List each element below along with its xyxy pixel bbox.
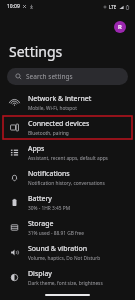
staticText: Sound & vibration <box>28 244 88 254</box>
staticText: Bluetooth, pairing <box>28 130 69 137</box>
staticText: Apps <box>28 144 45 154</box>
button[interactable]: Connected devices <box>0 115 135 140</box>
staticText: Display <box>28 269 52 279</box>
staticText: R <box>118 23 122 31</box>
staticText: Search settings <box>26 72 73 81</box>
staticText: Connected devices <box>28 119 90 129</box>
button[interactable]: Apps <box>0 140 135 165</box>
staticText: LTE <box>109 4 117 10</box>
button[interactable]: Search settings <box>7 68 128 85</box>
button[interactable]: Display <box>0 265 135 290</box>
staticText: 10:09 <box>7 3 20 10</box>
staticText: 30% - 1HR 3:45 PM <box>28 205 71 212</box>
button[interactable]: Account <box>114 21 126 33</box>
button[interactable]: Storage <box>0 215 135 240</box>
button[interactable]: Network & internet <box>0 90 135 115</box>
staticText: Storage <box>28 219 54 229</box>
button[interactable]: Battery <box>0 190 135 215</box>
staticText: Mobile, Wi-Fi, hotspot <box>28 105 77 112</box>
staticText: Notification history, conversations <box>28 180 105 187</box>
button[interactable]: Sound & vibration <box>0 240 135 265</box>
staticText: Volume, haptics, Do Not Disturb <box>28 255 101 262</box>
staticText: 31% used - 88.91 GB free <box>28 230 84 237</box>
staticText: Settings <box>9 42 63 61</box>
staticText: Network & internet <box>28 94 92 104</box>
button[interactable]: Notifications <box>0 165 135 190</box>
staticText: Assistant, recent apps, default apps <box>28 155 108 162</box>
staticText: Notifications <box>28 169 70 179</box>
staticText: Dark theme, font size, brightness <box>28 280 103 287</box>
staticText: Battery <box>28 194 52 204</box>
